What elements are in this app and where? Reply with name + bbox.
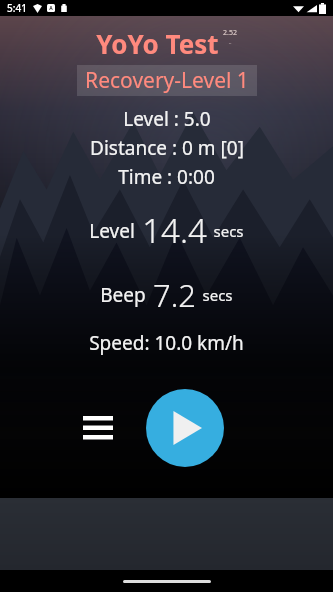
staticText: Time : 0:00 [118, 164, 215, 190]
staticText: secs [202, 285, 233, 305]
staticText: Level : 5.0 [123, 106, 211, 132]
button[interactable]: Recovery-Level 1 [77, 65, 257, 96]
staticText: 5:41 [7, 1, 27, 15]
staticText: .. [228, 38, 232, 46]
staticText: Speed: 10.0 km/h [89, 330, 244, 356]
button[interactable]: Menu [75, 405, 121, 451]
staticText: Distance : 0 m [0] [90, 135, 244, 161]
staticText: 7.2 [153, 274, 196, 316]
staticText: A [49, 5, 53, 12]
staticText: Recovery-Level 1 [85, 66, 249, 95]
staticText: secs [213, 221, 244, 241]
staticText: Level [89, 218, 135, 244]
staticText: 2.52 [223, 28, 237, 38]
staticText: 14.4 [142, 208, 207, 253]
staticText: YoYo Test [96, 26, 219, 61]
button[interactable]: Start [146, 389, 224, 467]
staticText: Beep [100, 282, 146, 308]
